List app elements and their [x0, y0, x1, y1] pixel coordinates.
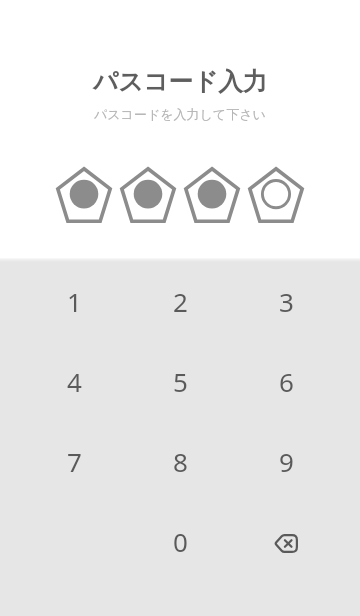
staticText: 8	[173, 444, 188, 479]
staticText: 5	[173, 364, 188, 399]
button[interactable]: 7	[0, 421, 120, 501]
button[interactable]: Backspace	[240, 501, 360, 581]
staticText: 0	[173, 524, 188, 559]
button[interactable]: 2	[120, 261, 240, 341]
button[interactable]: 6	[240, 341, 360, 421]
button[interactable]: 4	[0, 341, 120, 421]
staticText: パスコード入力	[93, 66, 268, 97]
button[interactable]: 1	[0, 261, 120, 341]
staticText: 4	[67, 364, 82, 399]
button[interactable]: 5	[120, 341, 240, 421]
staticText: 1	[67, 284, 82, 319]
staticText: 9	[279, 444, 294, 479]
button[interactable]: 0	[120, 501, 240, 581]
staticText: 2	[173, 284, 188, 319]
staticText: パスコードを入力して下さい	[94, 106, 266, 122]
staticText: 7	[67, 444, 82, 479]
button[interactable]: 3	[240, 261, 360, 341]
staticText: 3	[279, 284, 294, 319]
staticText: 6	[279, 364, 294, 399]
button[interactable]: 8	[120, 421, 240, 501]
button[interactable]: 9	[240, 421, 360, 501]
